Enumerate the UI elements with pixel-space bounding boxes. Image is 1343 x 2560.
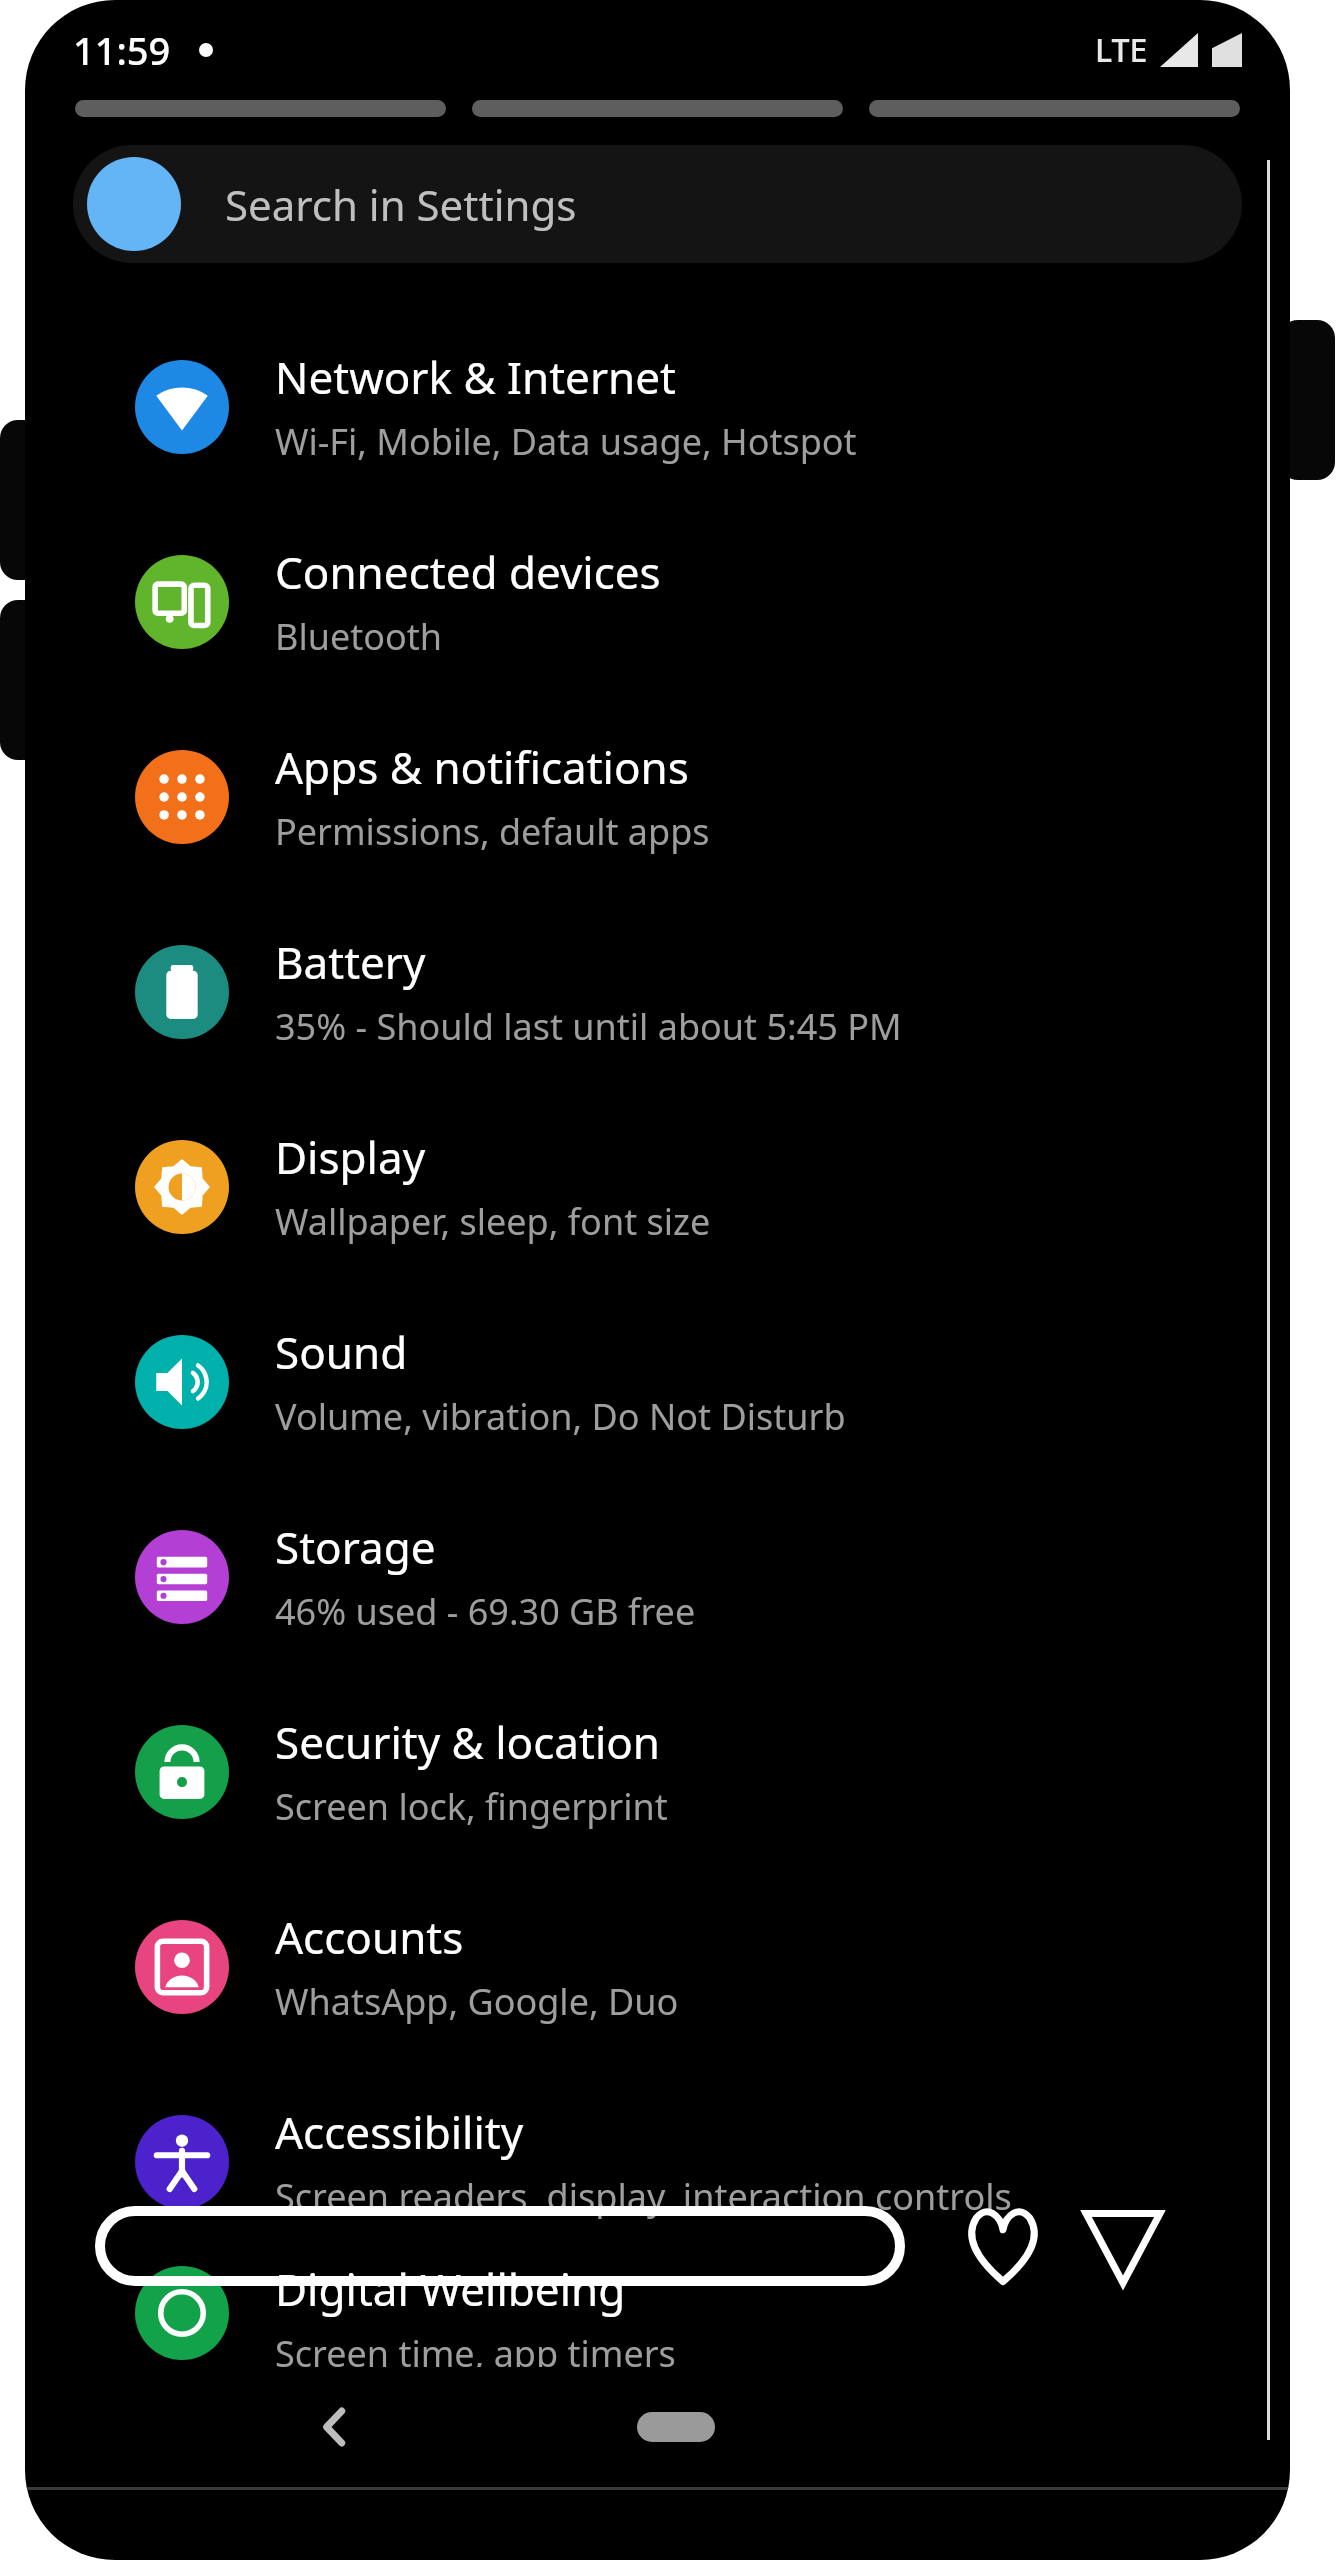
staticText: 11:59 [73,24,171,76]
staticText: LTE [1095,28,1148,72]
staticText: WhatsApp, Google, Duo [275,1977,679,2026]
staticText: Sound [275,1322,408,1382]
staticText: Wallpaper, sleep, font size [275,1197,711,1246]
button[interactable]: Network & Internet [25,309,1290,504]
button[interactable]: Share [1077,2200,1169,2292]
staticText: Display [275,1127,426,1187]
button[interactable]: Security & location [25,1674,1290,1869]
button[interactable]: Like [957,2200,1049,2292]
staticText: Screen lock, fingerprint [275,1782,668,1831]
button[interactable] [95,2206,905,2286]
staticText: Apps & notifications [275,737,689,797]
staticText: Security & location [275,1712,661,1772]
button[interactable]: Connected devices [25,504,1290,699]
staticText: Digital Wellbeing [275,2259,626,2319]
staticText: Search in Settings [225,176,577,233]
button[interactable]: Search in Settings [73,145,1242,263]
staticText: Screen time, app timers [275,2329,676,2367]
button[interactable]: Back [295,2387,375,2467]
button[interactable]: Accounts [25,1869,1290,2064]
staticText: Battery [275,932,426,992]
button[interactable]: Display [25,1089,1290,1284]
staticText: Wi-Fi, Mobile, Data usage, Hotspot [275,417,857,466]
staticText: Network & Internet [275,347,676,407]
staticText: Screen readers, display, interaction con… [275,2172,1012,2221]
button[interactable]: Digital Wellbeing [25,2259,1290,2367]
button[interactable]: Accessibility [25,2064,1290,2259]
staticText: 46% used - 69.30 GB free [275,1587,696,1636]
staticText: Bluetooth [275,612,443,661]
staticText: Volume, vibration, Do Not Disturb [275,1392,846,1441]
button[interactable]: Sound [25,1284,1290,1479]
button[interactable]: Home [637,2412,715,2442]
button[interactable]: Apps & notifications [25,699,1290,894]
staticText: Storage [275,1517,436,1577]
staticText: 35% - Should last until about 5:45 PM [275,1002,902,1051]
staticText: Accessibility [275,2102,524,2162]
button[interactable]: Battery [25,894,1290,1089]
button[interactable]: Storage [25,1479,1290,1674]
staticText: Permissions, default apps [275,807,710,856]
staticText: Connected devices [275,542,661,602]
staticText: Accounts [275,1907,464,1967]
